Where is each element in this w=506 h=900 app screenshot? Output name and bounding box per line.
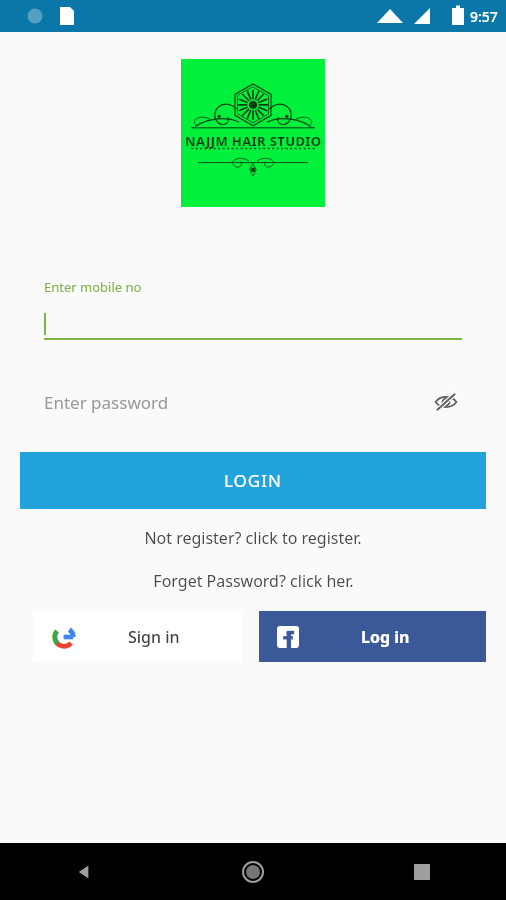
button[interactable]: Forget Password? click her. xyxy=(0,566,506,596)
button[interactable]: LOGIN xyxy=(20,452,486,509)
staticText: 9:57 xyxy=(470,7,498,26)
button[interactable]: Show password xyxy=(430,386,462,418)
staticText: Enter mobile no xyxy=(44,278,142,296)
button[interactable]: Home xyxy=(168,843,337,900)
button[interactable]: Not register? click to register. xyxy=(0,522,506,554)
staticText: Sign in xyxy=(128,626,180,648)
staticText: Not register? click to register. xyxy=(144,527,362,549)
staticText: NAJJM HAIR STUDIO xyxy=(185,132,322,150)
staticText: Enter password xyxy=(44,391,430,414)
button[interactable]: Log in xyxy=(259,611,486,662)
staticText: Log in xyxy=(361,626,410,648)
button[interactable]: Sign in xyxy=(33,611,242,662)
staticText: Forget Password? click her. xyxy=(153,570,354,592)
button[interactable]: Enter mobile no xyxy=(44,278,462,340)
button[interactable]: Recent apps xyxy=(337,843,506,900)
button[interactable]: Back xyxy=(0,843,168,900)
button[interactable]: Enter password xyxy=(44,383,462,421)
staticText: LOGIN xyxy=(224,469,282,492)
